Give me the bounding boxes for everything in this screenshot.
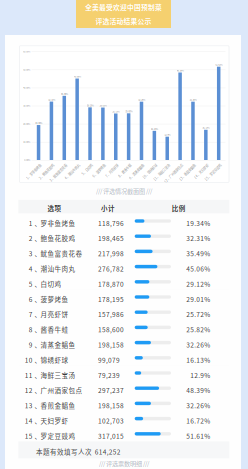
staticText: /// 评选情况截面图 ///	[96, 186, 152, 195]
staticText: 12.9%	[164, 133, 170, 136]
staticText: 198,465	[98, 233, 124, 243]
staticText: 、	[34, 431, 41, 441]
staticText: 29.12%	[86, 103, 93, 107]
staticText: 鲍鱼花胶鸡	[41, 233, 76, 243]
staticText: 罗非鱼烤鱼	[41, 218, 76, 228]
staticText: 79,239	[98, 370, 120, 380]
staticText: 16.72%	[186, 416, 210, 425]
staticText: 20.00%	[23, 122, 30, 126]
staticText: 178,195	[98, 294, 124, 304]
staticText: 3、鱿鱼富贵花卷	[42, 163, 65, 167]
staticText: 菠萝烤鱼	[41, 294, 69, 304]
staticText: 19.34%	[35, 121, 42, 125]
staticText: 30.00%	[23, 104, 30, 108]
staticText: 19.34%	[186, 218, 210, 228]
staticText: 清蒸金鲳鱼	[41, 340, 76, 349]
staticText: 29.01%	[99, 103, 106, 107]
staticText: 广州酒家包点	[41, 385, 83, 395]
staticText: 0.00%	[24, 158, 30, 162]
staticText: 217,998	[98, 249, 124, 258]
staticText: 178,870	[98, 279, 124, 289]
staticText: 天妇罗虾	[41, 416, 69, 425]
staticText: 198,158	[98, 340, 124, 349]
staticText: 48.39%	[177, 68, 184, 72]
staticText: 3	[29, 249, 33, 258]
staticText: 12	[25, 385, 33, 395]
staticText: 锦绣虾球	[41, 355, 69, 365]
staticText: 、	[34, 325, 41, 334]
staticText: 海鲜三宝汤	[41, 370, 76, 380]
staticText: 、	[34, 355, 41, 365]
staticText: 9、清蒸金鲳鱼	[122, 163, 142, 167]
staticText: 11、海鲜三宝汤	[146, 163, 168, 167]
staticText: 29.12%	[186, 279, 210, 289]
staticText: 、	[34, 294, 41, 304]
staticText: 1、罗非鱼烤鱼	[20, 163, 40, 167]
staticText: 5	[29, 279, 33, 289]
staticText: 、	[34, 385, 41, 395]
staticText: 、	[34, 309, 41, 319]
staticText: 、	[34, 233, 41, 243]
staticText: 本题有效填写人次	[36, 447, 92, 456]
staticText: 、	[34, 401, 41, 410]
staticText: 99,079	[98, 355, 120, 365]
staticText: 32.26%	[186, 401, 210, 410]
button[interactable]: 全美最受欢迎中国预制菜	[76, 0, 171, 28]
staticText: 8、酱香牛蛙	[113, 163, 130, 167]
staticText: 白切鸡	[41, 279, 62, 289]
staticText: /// 评选票数明细 ///	[99, 459, 149, 468]
staticText: 32.26%	[186, 340, 210, 349]
staticText: 4、潮汕牛肉丸	[58, 163, 78, 167]
staticText: 、	[34, 249, 41, 258]
staticText: 5、白切鸡	[77, 163, 91, 167]
staticText: 35.49%	[61, 92, 68, 96]
staticText: 鱿鱼富贵花卷	[41, 249, 83, 258]
staticText: 297,237	[98, 385, 124, 395]
staticText: 60.00%	[23, 49, 30, 53]
staticText: 25.72%	[186, 309, 210, 319]
staticText: 317,015	[98, 431, 124, 441]
staticText: 全美最受欢迎中国预制菜	[85, 2, 162, 12]
staticText: 16.13%	[186, 355, 210, 365]
staticText: 7	[29, 309, 33, 319]
staticText: 比例	[172, 203, 186, 213]
staticText: 、	[34, 416, 41, 425]
staticText: 25.72%	[112, 109, 119, 113]
staticText: 118,796	[98, 218, 124, 228]
staticText: 102,703	[98, 416, 124, 425]
staticText: 10、锦绣虾球	[136, 163, 155, 167]
staticText: 157,986	[98, 309, 124, 319]
staticText: 32.26%	[138, 98, 145, 101]
staticText: 14	[25, 416, 33, 425]
staticText: 香煎金鲳鱼	[41, 401, 76, 410]
staticText: 35.49%	[186, 249, 210, 258]
staticText: 1	[29, 218, 33, 228]
staticText: 32.31%	[186, 233, 210, 243]
staticText: 48.39%	[186, 385, 210, 395]
staticText: 、	[34, 218, 41, 228]
staticText: 2、鲍鱼花胶鸡	[32, 163, 52, 167]
staticText: 评选活动结果公示	[95, 16, 151, 26]
staticText: 32.26%	[189, 98, 196, 101]
staticText: 25.82%	[186, 325, 210, 334]
staticText: 12、广州酒家包点	[156, 163, 181, 167]
staticText: 13、香煎金鲳鱼	[172, 163, 194, 167]
staticText: 45.06%	[186, 264, 210, 273]
staticText: 罗定豆豉鸡	[41, 431, 76, 441]
staticText: 、	[34, 370, 41, 380]
staticText: 614,252	[95, 447, 121, 456]
staticText: 潮汕牛肉丸	[41, 264, 76, 273]
staticText: 、	[34, 340, 41, 349]
staticText: 选项	[48, 203, 62, 213]
staticText: 51.61%	[186, 431, 210, 441]
staticText: 45.06%	[74, 74, 81, 78]
staticText: 15	[25, 431, 33, 441]
staticText: 6	[29, 294, 33, 304]
staticText: 2	[29, 233, 33, 243]
staticText: 6、菠萝烤鱼	[87, 163, 104, 167]
staticText: 7、月亮虾饼	[100, 163, 117, 167]
staticText: 、	[34, 279, 41, 289]
staticText: 酱香牛蛙	[41, 325, 69, 334]
staticText: 16.13%	[151, 127, 158, 131]
staticText: 50.00%	[23, 68, 30, 71]
